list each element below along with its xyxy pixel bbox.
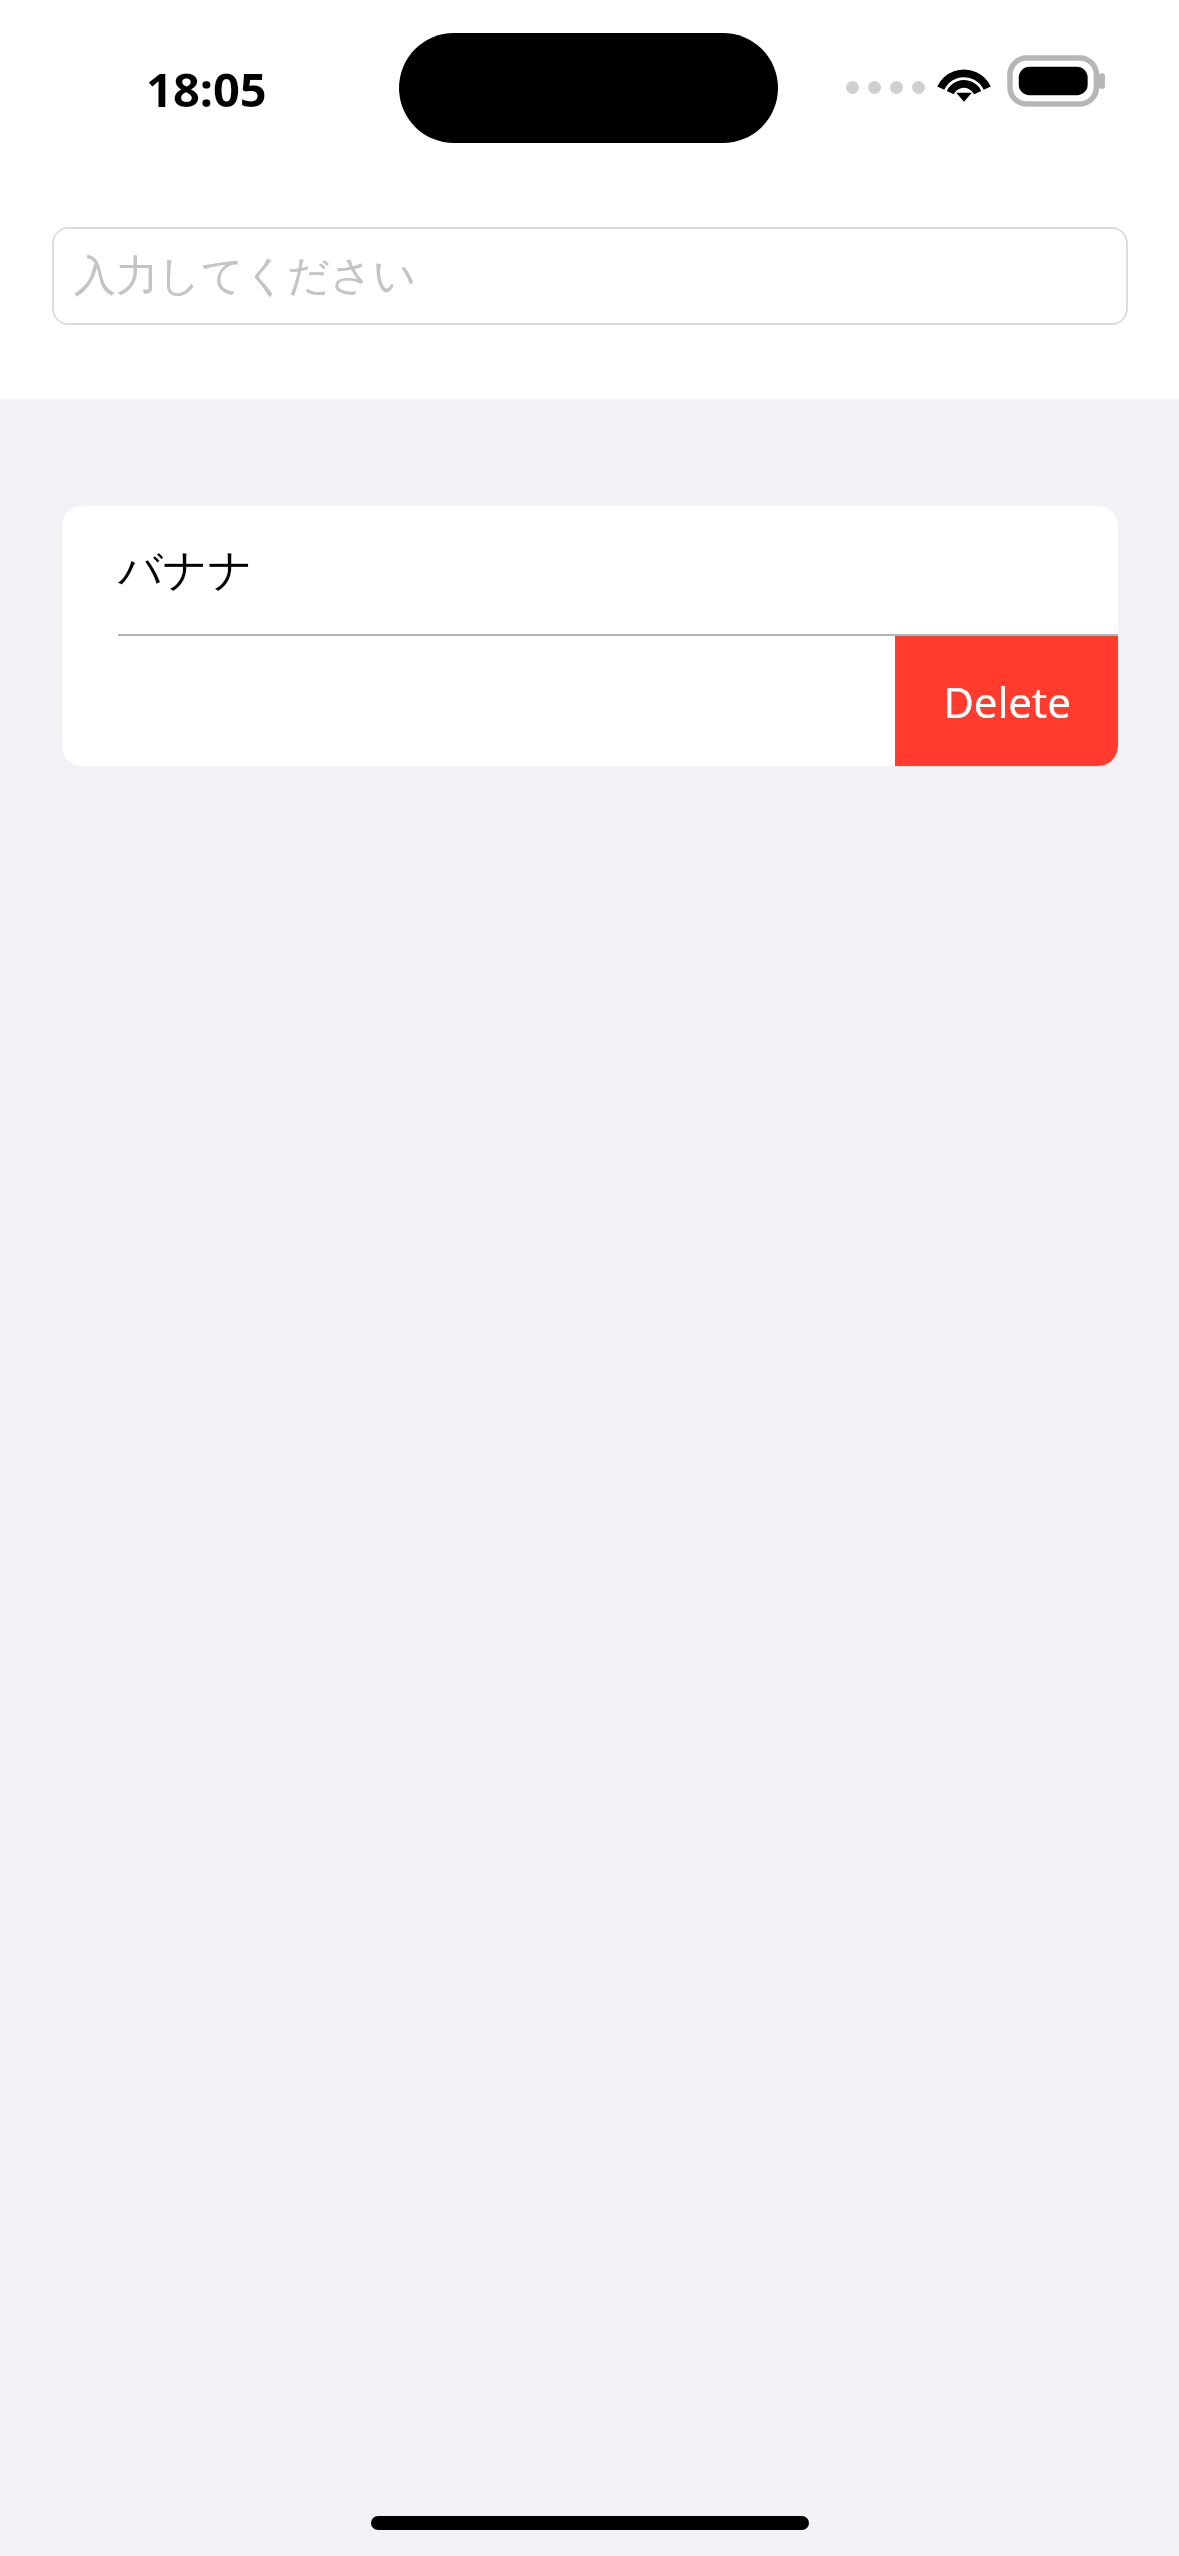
button[interactable]: 入力してください [52, 227, 1128, 325]
staticText: 18:05 [146, 57, 267, 121]
button[interactable]: Delete [895, 636, 1118, 766]
staticText: Delete [943, 673, 1071, 730]
other: Wi-Fi [937, 60, 991, 102]
staticText: 入力してください [74, 250, 416, 303]
other: Battery [1010, 58, 1106, 104]
button[interactable]: バナナ [62, 506, 1118, 634]
staticText: バナナ [118, 543, 254, 598]
